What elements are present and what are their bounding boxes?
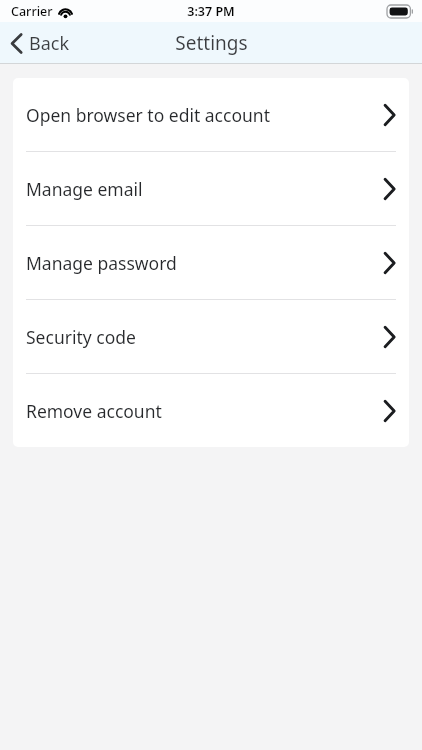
staticText: Security code [26,325,383,349]
staticText: Manage password [26,251,383,275]
staticText: Open browser to edit account [26,103,383,127]
button[interactable]: Open browser to edit account [13,78,409,151]
other: Manage email [383,178,396,200]
other: Remove account [383,400,396,422]
button[interactable]: Security code [13,300,409,373]
other: Manage password [383,252,396,274]
staticText: Manage email [26,177,383,201]
button[interactable]: Manage password [13,226,409,299]
button[interactable]: Manage email [13,152,409,225]
staticText: Remove account [26,399,383,423]
staticText: Settings [175,30,248,56]
staticText: 3:37 PM [187,3,235,20]
staticText: Back [29,31,70,56]
button[interactable]: Remove account [13,374,409,447]
other: Open browser to edit account [383,104,396,126]
staticText: Carrier [11,3,53,20]
button[interactable]: Back [0,22,80,64]
other: Security code [383,326,396,348]
